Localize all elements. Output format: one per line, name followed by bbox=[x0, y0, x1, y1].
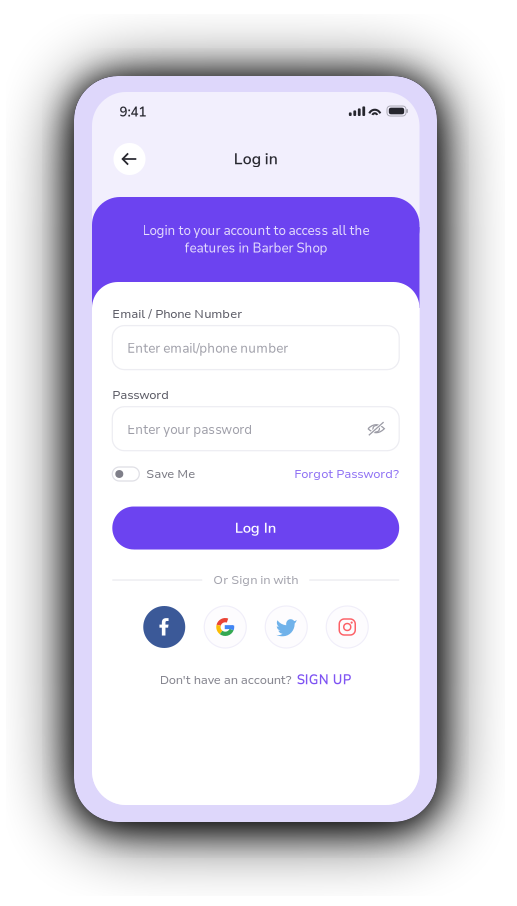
button[interactable]: Log In bbox=[112, 506, 399, 549]
button[interactable]: Sign in with Twitter bbox=[265, 606, 307, 648]
button[interactable]: Enter email/phone number bbox=[112, 326, 399, 370]
staticText: Log in bbox=[234, 148, 278, 170]
staticText: Log In bbox=[235, 518, 277, 538]
staticText: SIGN UP bbox=[297, 671, 352, 689]
staticText: Save Me bbox=[146, 466, 195, 482]
staticText: Enter email/phone number bbox=[127, 340, 288, 357]
staticText: 9:41 bbox=[119, 103, 146, 121]
staticText: Or Sign in with bbox=[213, 572, 298, 588]
staticText: Login to your account to access all the … bbox=[142, 222, 369, 257]
button[interactable]: Save Me bbox=[112, 464, 202, 484]
button[interactable]: Sign in with Facebook bbox=[143, 606, 185, 648]
button[interactable]: Enter your password bbox=[112, 407, 399, 451]
button[interactable]: Forgot Password? bbox=[269, 464, 399, 484]
staticText: Password bbox=[112, 387, 169, 403]
button[interactable]: Back bbox=[113, 143, 145, 175]
button[interactable]: SIGN UP bbox=[297, 671, 352, 689]
staticText: Don't have an account? bbox=[160, 672, 292, 688]
button[interactable]: Sign in with Google bbox=[204, 606, 246, 648]
button[interactable]: Sign in with Instagram bbox=[326, 606, 368, 648]
staticText: Forgot Password? bbox=[294, 466, 399, 482]
staticText: Enter your password bbox=[127, 421, 252, 438]
staticText: Email / Phone Number bbox=[112, 306, 242, 322]
